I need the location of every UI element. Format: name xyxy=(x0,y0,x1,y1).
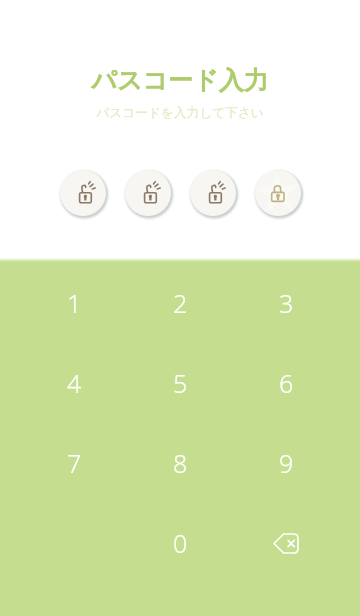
staticText: 0 xyxy=(173,526,188,560)
staticText: パスコードを入力して下さい xyxy=(96,105,264,121)
button[interactable]: Delete xyxy=(233,503,339,583)
staticText: 5 xyxy=(173,366,188,400)
other: Entered digit xyxy=(253,168,303,218)
button[interactable]: 0 xyxy=(127,503,233,583)
staticText: 6 xyxy=(279,366,294,400)
other: Empty digit xyxy=(58,168,108,218)
staticText: パスコード入力 xyxy=(91,65,269,96)
staticText: 2 xyxy=(173,286,188,320)
button[interactable]: 3 xyxy=(233,263,339,343)
button[interactable]: 4 xyxy=(21,343,127,423)
button[interactable]: 2 xyxy=(127,263,233,343)
other: Empty digit xyxy=(188,168,238,218)
staticText: 7 xyxy=(67,446,82,480)
staticText: 8 xyxy=(173,446,188,480)
button[interactable]: 8 xyxy=(127,423,233,503)
staticText: 9 xyxy=(279,446,294,480)
staticText: 4 xyxy=(67,366,82,400)
button[interactable]: 5 xyxy=(127,343,233,423)
staticText: 3 xyxy=(279,286,294,320)
button[interactable]: 9 xyxy=(233,423,339,503)
button[interactable]: 7 xyxy=(21,423,127,503)
staticText: 1 xyxy=(67,286,82,320)
button[interactable]: 1 xyxy=(21,263,127,343)
other: Empty digit xyxy=(123,168,173,218)
button[interactable]: 6 xyxy=(233,343,339,423)
